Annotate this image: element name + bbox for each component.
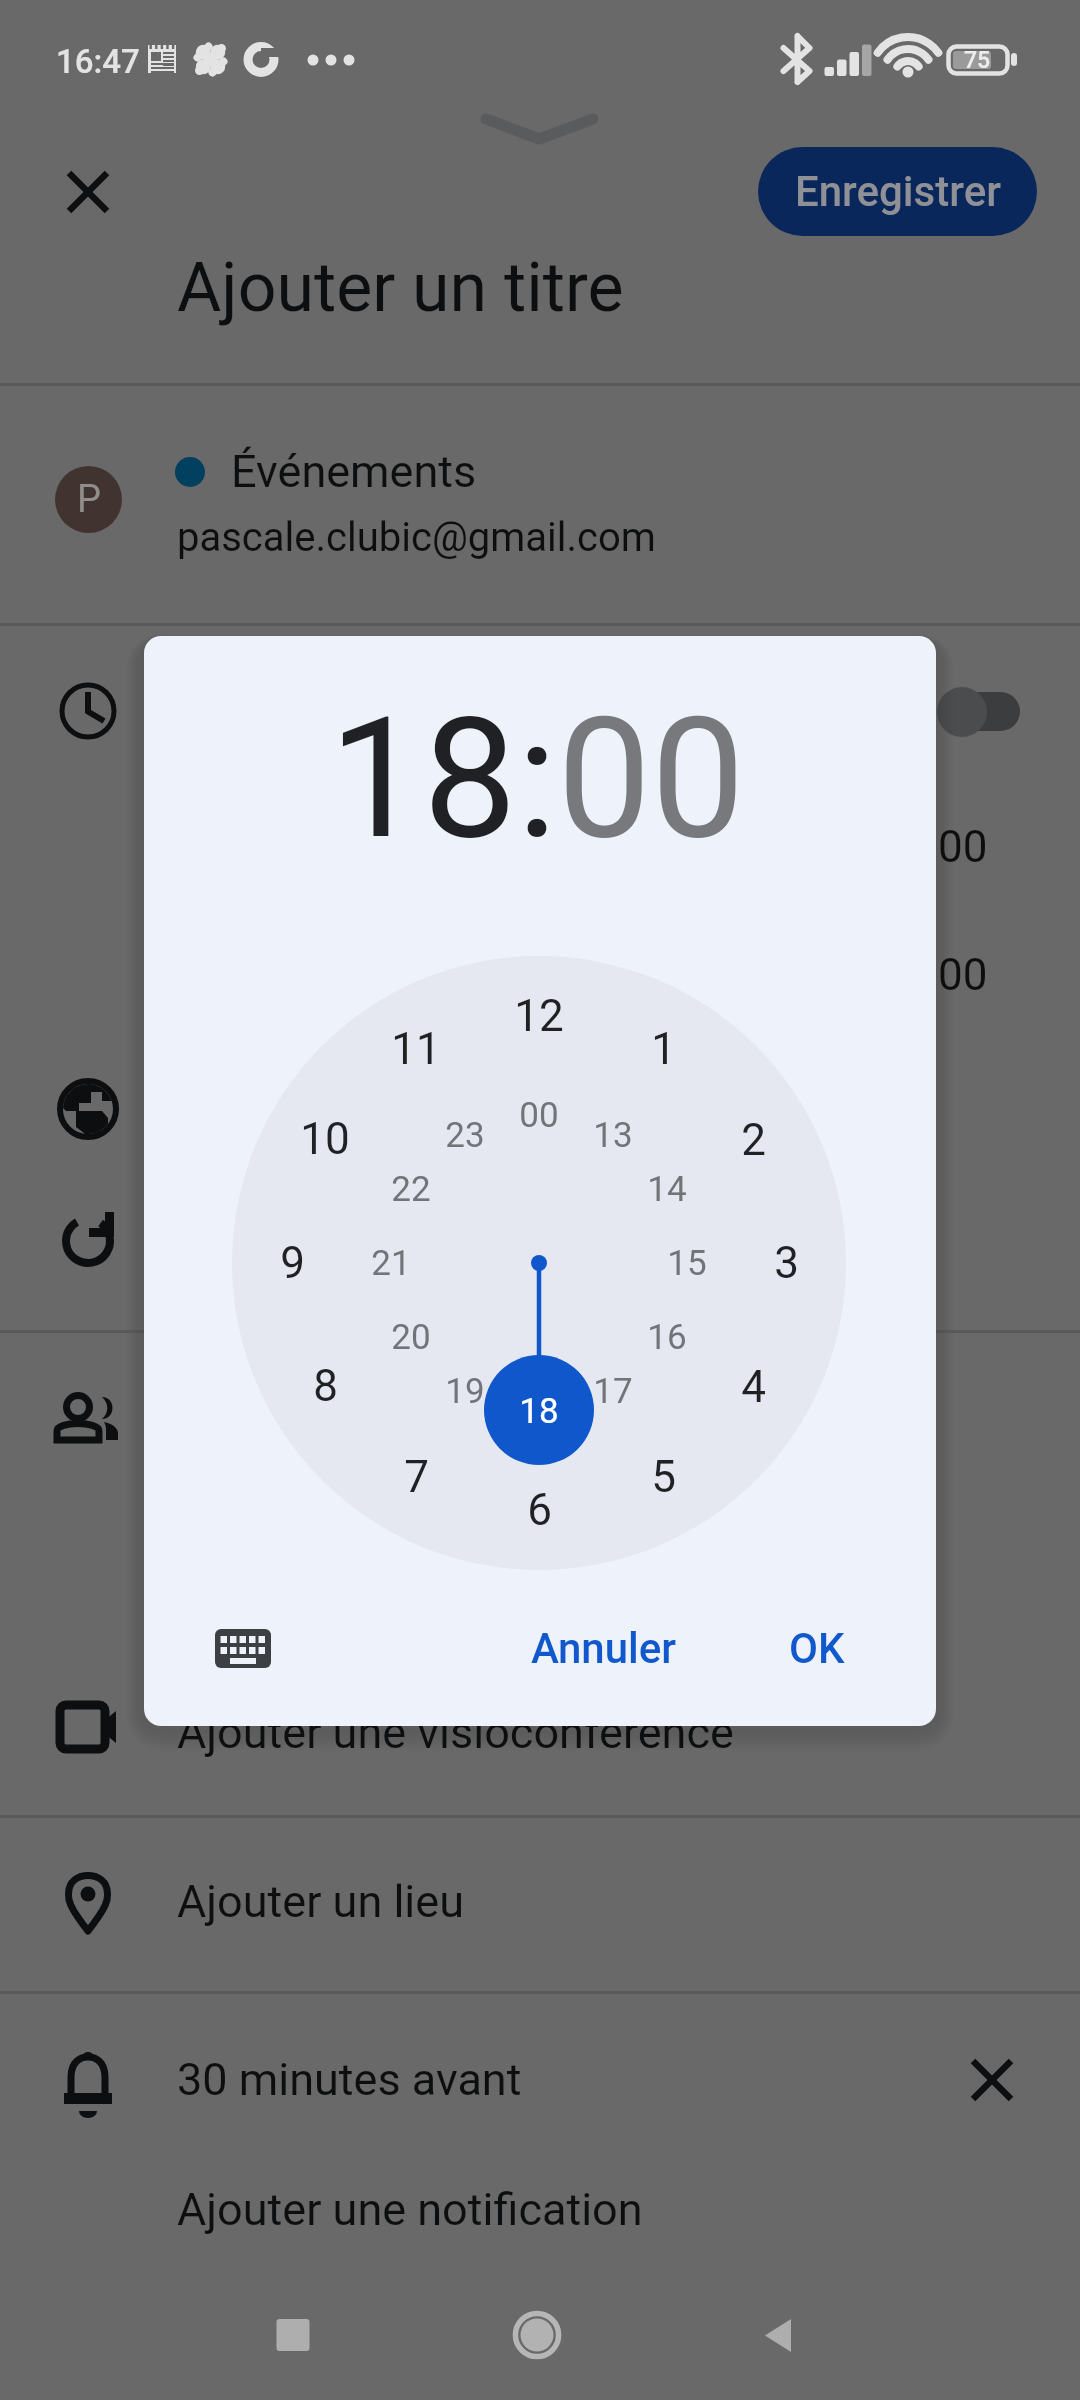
staticText: 7: [404, 1451, 429, 1503]
staticText: 14: [647, 1169, 687, 1210]
staticText: 00: [938, 949, 988, 1001]
button[interactable]: 22: [366, 1156, 456, 1222]
staticText: 19: [445, 1371, 485, 1412]
button[interactable]: Recent apps: [230, 2301, 354, 2400]
staticText: 5: [651, 1451, 676, 1503]
button[interactable]: 9: [247, 1230, 337, 1296]
staticText: 17: [593, 1371, 633, 1412]
button[interactable]: 18: [494, 1378, 584, 1444]
button[interactable]: [0, 1650, 1080, 1810]
staticText: 12: [514, 990, 564, 1042]
staticText: 4: [741, 1361, 766, 1413]
staticText: 15: [667, 1243, 707, 1284]
staticText: 20: [391, 1317, 431, 1358]
button[interactable]: 15: [642, 1230, 732, 1296]
button[interactable]: 11: [371, 1016, 461, 1082]
button[interactable]: 8: [280, 1353, 370, 1419]
staticText: 22: [391, 1169, 431, 1210]
staticText: 00: [519, 1095, 559, 1136]
button[interactable]: Remove reminder: [950, 2038, 1036, 2124]
staticText: Annuler: [531, 1624, 677, 1673]
button[interactable]: 5: [618, 1444, 708, 1510]
button[interactable]: All-day toggle: [938, 692, 1020, 731]
staticText: Ajouter un lieu: [177, 1875, 464, 1928]
button[interactable]: 21: [346, 1230, 436, 1296]
button[interactable]: [0, 240, 1080, 380]
button[interactable]: 00: [494, 1082, 584, 1148]
button[interactable]: [0, 860, 1080, 1030]
button[interactable]: 19: [420, 1358, 510, 1424]
button[interactable]: 20: [366, 1304, 456, 1370]
button[interactable]: [0, 2000, 1080, 2165]
button[interactable]: Account: [55, 466, 122, 533]
button[interactable]: Home: [476, 2301, 600, 2400]
button[interactable]: 12: [494, 983, 584, 1049]
staticText: 18:00: [329, 681, 745, 877]
staticText: 10: [300, 1113, 350, 1165]
button[interactable]: [0, 1040, 1080, 1180]
staticText: 2: [741, 1114, 766, 1166]
button[interactable]: Switch to keyboard input: [171, 1594, 315, 1702]
staticText: 6: [527, 1484, 552, 1536]
button[interactable]: Annuler: [512, 1594, 696, 1702]
staticText: P: [77, 477, 101, 522]
button[interactable]: [0, 390, 1080, 620]
button[interactable]: 6: [494, 1477, 584, 1543]
button[interactable]: 7: [371, 1444, 461, 1510]
staticText: 11: [391, 1023, 441, 1075]
staticText: 8: [313, 1360, 338, 1412]
button[interactable]: [0, 1180, 1080, 1328]
button[interactable]: OK: [756, 1594, 878, 1702]
staticText: Enregistrer: [795, 167, 1001, 216]
button[interactable]: Back: [716, 2301, 840, 2400]
button[interactable]: 17: [568, 1358, 658, 1424]
staticText: OK: [789, 1624, 845, 1673]
button[interactable]: 4: [708, 1354, 798, 1420]
staticText: 21: [371, 1243, 411, 1284]
button[interactable]: 23: [420, 1102, 510, 1168]
button[interactable]: 3: [741, 1230, 831, 1296]
button[interactable]: 14: [622, 1156, 712, 1222]
staticText: 16: [647, 1317, 687, 1358]
button[interactable]: 18:00: [144, 681, 932, 877]
button[interactable]: Close: [20, 150, 156, 236]
button[interactable]: [0, 630, 1080, 860]
staticText: 00: [938, 821, 988, 873]
staticText: 16:47: [56, 42, 140, 81]
button[interactable]: [0, 1340, 1080, 1500]
button[interactable]: Enregistrer: [758, 147, 1037, 236]
staticText: 30 minutes avant: [177, 2053, 522, 2106]
button[interactable]: [0, 2170, 1080, 2280]
staticText: Ajouter une notification: [177, 2183, 643, 2236]
staticText: pascale.clubic@gmail.com: [177, 514, 656, 561]
staticText: Événements: [231, 445, 477, 498]
button[interactable]: [0, 1825, 1080, 1985]
button[interactable]: 10: [280, 1106, 370, 1172]
staticText: 3: [774, 1237, 799, 1289]
button[interactable]: 1: [618, 1016, 708, 1082]
button[interactable]: 2: [708, 1107, 798, 1173]
staticText: 23: [445, 1115, 485, 1156]
button[interactable]: 16: [622, 1304, 712, 1370]
staticText: Ajouter une visioconférence: [177, 1706, 734, 1759]
staticText: 75: [964, 47, 991, 74]
staticText: 9: [280, 1237, 305, 1289]
staticText: Ajouter un titre: [177, 248, 624, 328]
staticText: 1: [651, 1023, 676, 1075]
staticText: 13: [593, 1115, 633, 1156]
staticText: 18: [519, 1391, 559, 1432]
button[interactable]: 13: [568, 1102, 658, 1168]
